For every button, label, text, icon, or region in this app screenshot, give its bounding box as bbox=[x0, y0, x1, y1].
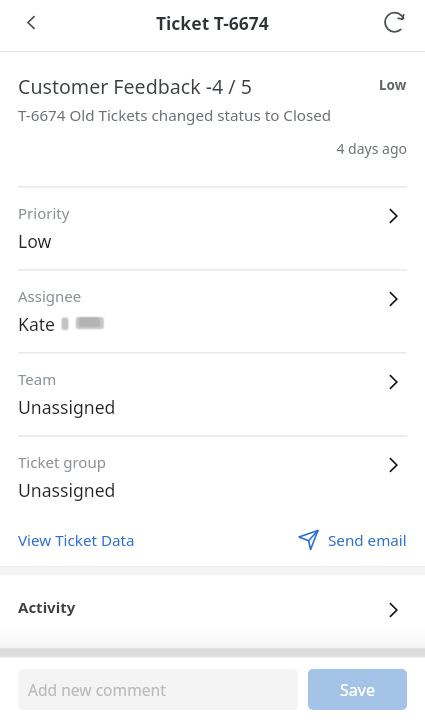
staticText: Kate bbox=[18, 312, 56, 336]
staticText: Assignee bbox=[18, 286, 82, 306]
button[interactable]: Add new comment bbox=[18, 669, 298, 710]
button[interactable]: Assignee bbox=[0, 271, 425, 352]
staticText: Customer Feedback -4 / 5 bbox=[18, 73, 379, 100]
staticText: 4 days ago bbox=[18, 139, 407, 158]
staticText: T-6674 Old Tickets changed status to Clo… bbox=[18, 105, 332, 126]
staticText: Unassigned bbox=[18, 395, 116, 419]
button[interactable]: Save bbox=[308, 669, 407, 710]
staticText: Ticket T-6674 bbox=[156, 11, 269, 35]
staticText: Activity bbox=[18, 597, 389, 617]
staticText: Add new comment bbox=[28, 679, 166, 700]
button[interactable]: Team bbox=[0, 354, 425, 435]
button[interactable]: Back bbox=[6, 5, 48, 47]
staticText: Team bbox=[18, 369, 57, 389]
staticText: Low bbox=[379, 76, 407, 94]
staticText: Save bbox=[340, 679, 375, 701]
staticText: Unassigned bbox=[18, 478, 116, 502]
staticText: Ticket group bbox=[18, 452, 106, 472]
button[interactable]: Refresh bbox=[374, 5, 416, 47]
button[interactable]: Activity bbox=[0, 576, 425, 640]
button[interactable]: Priority bbox=[0, 188, 425, 269]
button[interactable]: Ticket group bbox=[0, 437, 425, 518]
button[interactable]: View Ticket Data bbox=[18, 530, 135, 551]
button[interactable]: Send email bbox=[296, 529, 407, 551]
staticText: Low bbox=[18, 229, 52, 253]
staticText: View Ticket Data bbox=[18, 530, 135, 551]
staticText: Priority bbox=[18, 203, 70, 223]
staticText: Send email bbox=[328, 530, 407, 551]
